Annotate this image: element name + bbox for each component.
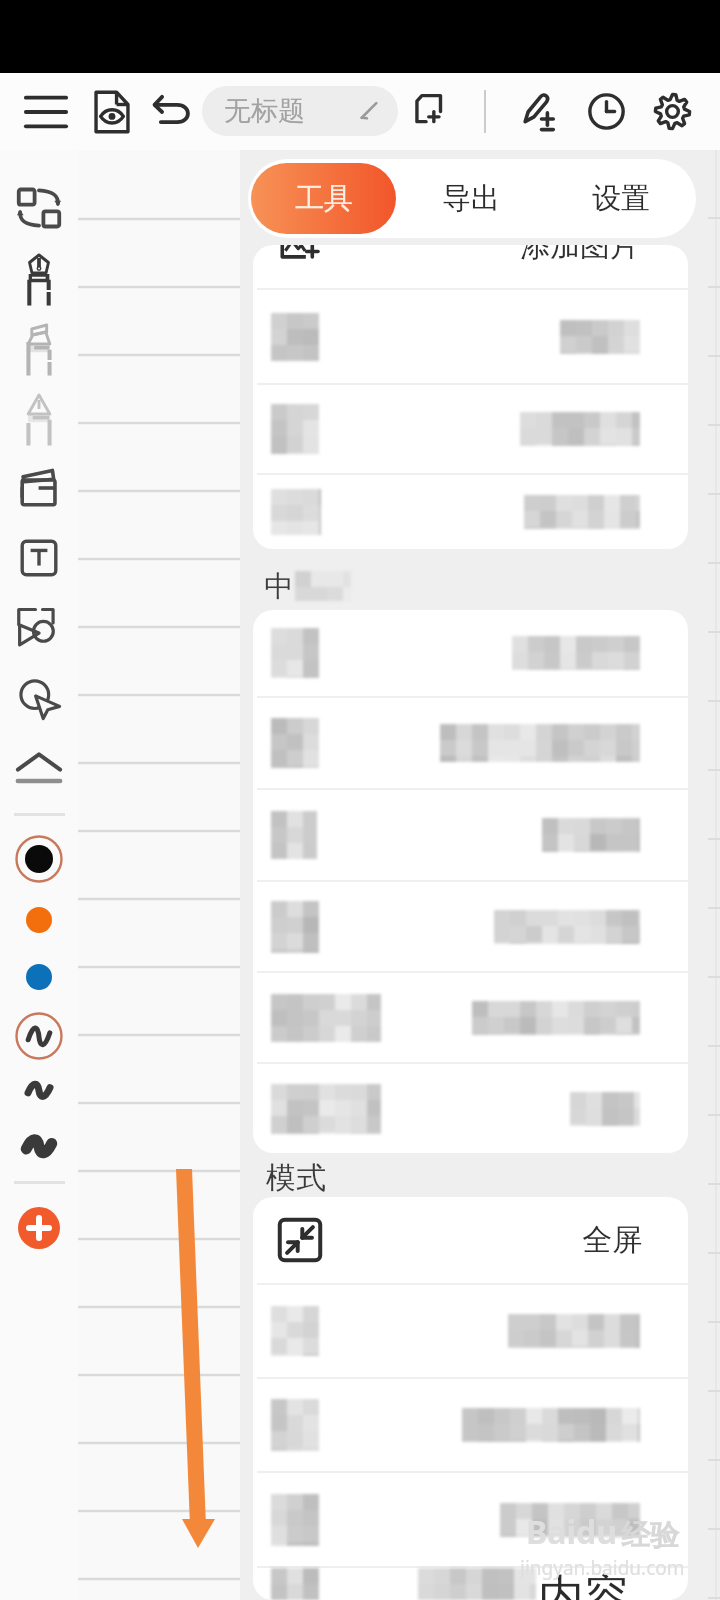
- button[interactable]: 内容: [253, 1568, 688, 1600]
- button[interactable]: 导出: [396, 159, 546, 238]
- staticText: 设置: [592, 180, 650, 217]
- button[interactable]: Menu: [17, 73, 75, 150]
- staticText: 经验: [621, 1517, 679, 1554]
- button[interactable]: [253, 475, 688, 549]
- button[interactable]: [253, 1473, 688, 1566]
- button[interactable]: Thin stroke: [0, 1006, 78, 1066]
- staticText: 添加图片: [520, 245, 640, 265]
- button[interactable]: Orange colour: [0, 890, 78, 950]
- button[interactable]: Preview: [83, 73, 141, 150]
- button[interactable]: 工具: [251, 163, 396, 234]
- button[interactable]: Lasso: [0, 598, 78, 658]
- button[interactable]: [253, 698, 688, 788]
- staticText: 导出: [442, 180, 500, 217]
- button[interactable]: [253, 290, 688, 383]
- button[interactable]: 添加图片: [253, 245, 688, 288]
- button[interactable]: [253, 385, 688, 473]
- staticText: 无标题: [224, 94, 305, 128]
- staticText: 全屏: [582, 1221, 642, 1259]
- button[interactable]: Black colour: [0, 829, 78, 889]
- button[interactable]: [253, 1285, 688, 1377]
- button[interactable]: Shape: [0, 178, 78, 238]
- button[interactable]: Blue colour: [0, 947, 78, 1007]
- button[interactable]: Thick stroke: [0, 1116, 78, 1176]
- button[interactable]: 无标题: [202, 86, 398, 136]
- button[interactable]: 设置: [546, 159, 696, 238]
- button[interactable]: Marker: [0, 319, 78, 379]
- button[interactable]: Medium stroke: [0, 1060, 78, 1120]
- button[interactable]: [253, 610, 688, 696]
- button[interactable]: Ruler: [0, 738, 78, 798]
- staticText: 模式: [266, 1159, 326, 1197]
- button[interactable]: Add tool: [18, 1207, 60, 1249]
- staticText: 内容: [538, 1568, 630, 1600]
- button[interactable]: Pen: [0, 249, 78, 309]
- button[interactable]: 全屏: [253, 1197, 688, 1283]
- button[interactable]: Eraser: [0, 458, 78, 518]
- button[interactable]: Select: [0, 668, 78, 728]
- button[interactable]: Undo: [144, 73, 202, 150]
- staticText: Baidu: [526, 1510, 618, 1554]
- button[interactable]: [253, 1064, 688, 1153]
- button[interactable]: Add ink: [510, 73, 568, 150]
- button[interactable]: [253, 973, 688, 1062]
- button[interactable]: Pencil: [0, 389, 78, 449]
- staticText: 中: [264, 568, 293, 605]
- button[interactable]: [253, 790, 688, 880]
- button[interactable]: [253, 882, 688, 971]
- staticText: 工具: [295, 180, 353, 217]
- button[interactable]: History: [577, 73, 635, 150]
- staticText: jingyan.baidu.com: [520, 1555, 685, 1581]
- button[interactable]: [253, 1379, 688, 1471]
- button[interactable]: Settings: [643, 73, 701, 150]
- button[interactable]: Text: [0, 528, 78, 588]
- button[interactable]: New page: [402, 73, 460, 150]
